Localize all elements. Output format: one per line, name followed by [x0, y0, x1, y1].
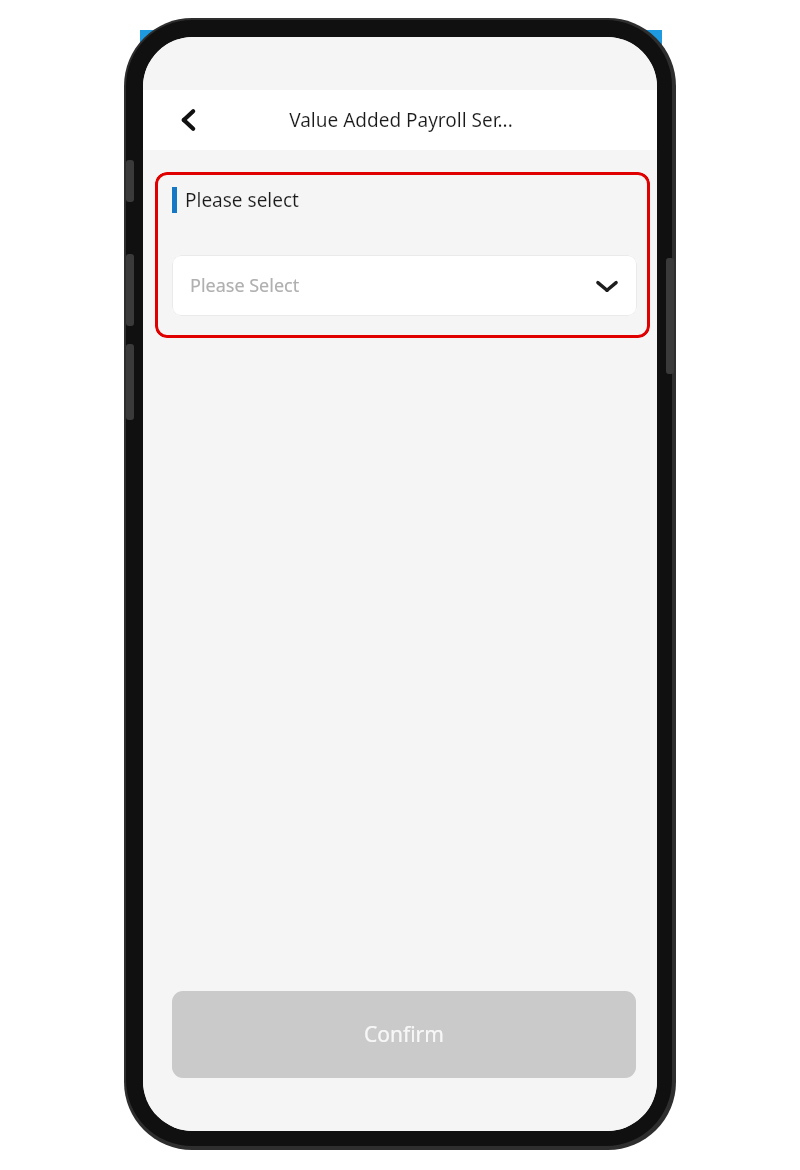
- button[interactable]: Confirm: [172, 991, 636, 1078]
- staticText: Confirm: [364, 1020, 444, 1049]
- button[interactable]: Back: [161, 92, 217, 148]
- staticText: Value Added Payroll Ser...: [289, 107, 513, 133]
- staticText: Please Select: [190, 273, 300, 298]
- button[interactable]: Please Select: [172, 255, 637, 316]
- staticText: Please select: [185, 187, 299, 213]
